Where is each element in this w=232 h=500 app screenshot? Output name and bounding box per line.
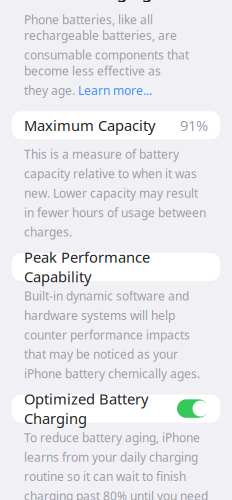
button[interactable]: Optimized Battery Charging bbox=[0, 395, 232, 423]
button[interactable]: Peak Performance Capability bbox=[0, 253, 232, 281]
staticText: they age. bbox=[24, 82, 78, 98]
staticText: Battery Health & Charging bbox=[81, 0, 209, 3]
staticText: Peak Performance Capability bbox=[24, 247, 150, 286]
staticText: To reduce battery aging, iPhone learns f… bbox=[24, 430, 208, 500]
staticText: 91% bbox=[180, 115, 208, 135]
staticText: Learn more... bbox=[78, 82, 152, 98]
staticText: Built-in dynamic software and hardware s… bbox=[24, 288, 200, 382]
staticText: This is a measure of battery capacity re… bbox=[24, 146, 206, 240]
button[interactable]: Maximum Capacity bbox=[0, 111, 232, 139]
staticText: Maximum Capacity bbox=[24, 115, 155, 135]
staticText: Optimized Battery Charging bbox=[24, 389, 148, 428]
button[interactable]: Learn more... bbox=[78, 82, 152, 98]
staticText: consumable components that become less e… bbox=[24, 47, 189, 79]
staticText: Phone batteries, like all rechargeable b… bbox=[24, 11, 177, 43]
